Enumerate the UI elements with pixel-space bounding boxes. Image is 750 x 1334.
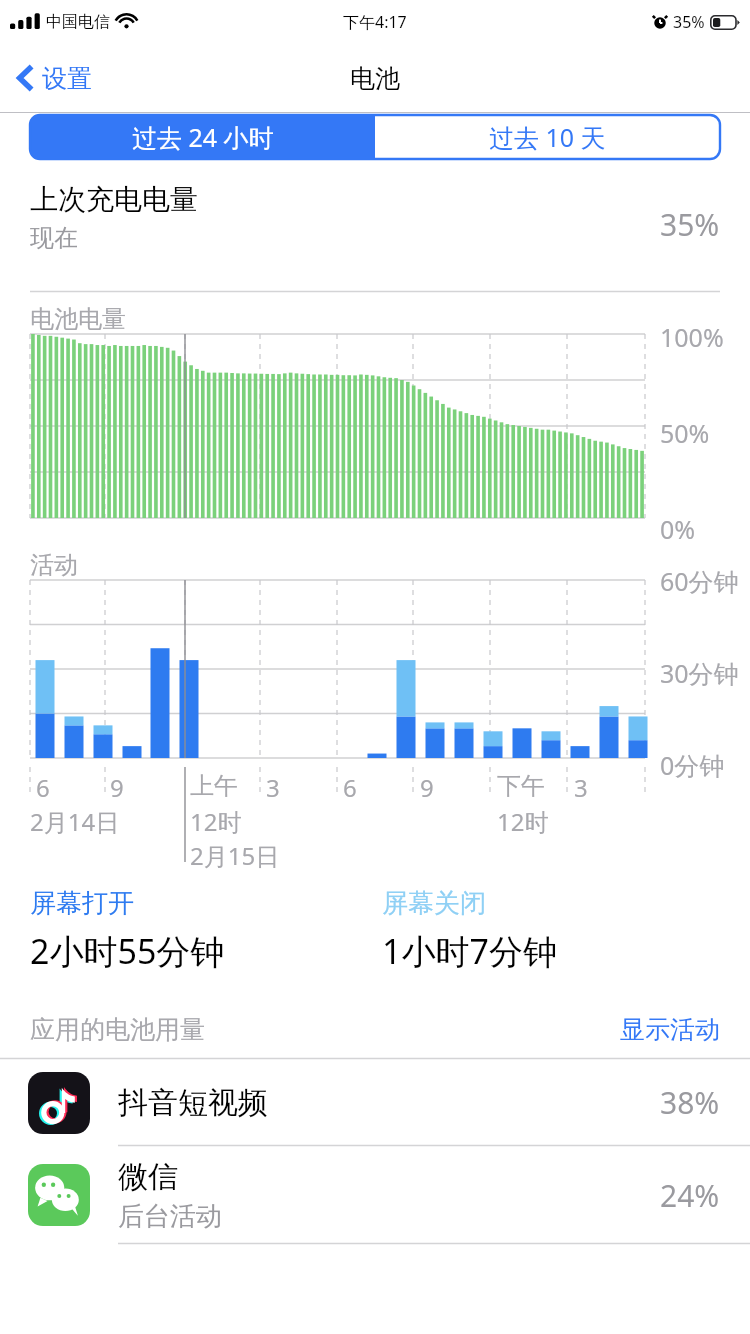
staticText: 35%	[660, 204, 720, 245]
button[interactable]: 微信	[0, 1146, 750, 1244]
staticText: 2月15日	[190, 839, 280, 872]
staticText: 显示活动	[620, 1014, 720, 1045]
staticText: 9	[110, 771, 124, 804]
staticText: 过去 10 天	[489, 120, 606, 154]
staticText: 现在	[30, 223, 78, 253]
staticText: 电池	[350, 63, 400, 94]
staticText: 30分钟	[660, 656, 739, 690]
staticText: 上次充电电量	[30, 182, 198, 217]
staticText: 0分钟	[660, 748, 725, 782]
staticText: 电池电量	[30, 304, 126, 334]
button[interactable]: 显示活动	[620, 1014, 750, 1045]
button[interactable]: 过去 24 小时	[30, 115, 375, 159]
staticText: 100%	[660, 320, 724, 354]
staticText: 微信	[118, 1158, 178, 1196]
staticText: 下午	[497, 771, 545, 801]
button[interactable]: 设置	[8, 55, 100, 101]
staticText: 24%	[660, 1175, 720, 1216]
button[interactable]: 抖音短视频	[0, 1059, 750, 1146]
staticText: 9	[420, 771, 434, 804]
staticText: 35%	[673, 11, 705, 33]
staticText: 上午	[190, 771, 238, 801]
staticText: 过去 24 小时	[132, 120, 274, 154]
staticText: 后台活动	[118, 1200, 222, 1233]
staticText: 0%	[660, 512, 696, 546]
button[interactable]: 过去 10 天	[375, 115, 720, 159]
staticText: 2小时55分钟	[30, 928, 225, 974]
staticText: 50%	[660, 416, 710, 450]
staticText: 1小时7分钟	[382, 928, 557, 974]
staticText: 38%	[660, 1082, 720, 1123]
staticText: 3	[266, 771, 280, 804]
staticText: 抖音短视频	[118, 1084, 268, 1122]
staticText: 屏幕关闭	[382, 887, 486, 920]
staticText: 活动	[30, 550, 78, 580]
staticText: 6	[36, 771, 50, 804]
staticText: 2月14日	[30, 805, 120, 838]
staticText: 60分钟	[660, 564, 739, 598]
staticText: 中国电信	[46, 12, 110, 32]
staticText: 下午4:17	[343, 11, 407, 33]
staticText: 12时	[497, 805, 549, 838]
staticText: 6	[343, 771, 357, 804]
staticText: 12时	[190, 805, 242, 838]
staticText: 设置	[42, 63, 92, 94]
staticText: 3	[574, 771, 588, 804]
staticText: 应用的电池用量	[30, 1014, 205, 1045]
staticText: 屏幕打开	[30, 887, 134, 920]
